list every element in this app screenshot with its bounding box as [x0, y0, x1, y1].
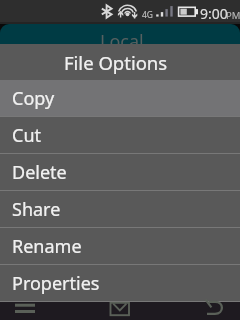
staticText: Properties: [12, 271, 100, 296]
staticText: PM: [226, 9, 240, 22]
staticText: 9:00: [200, 4, 228, 23]
button[interactable]: Share: [0, 191, 240, 227]
staticText: Rename: [12, 234, 82, 259]
button[interactable]: Back: [160, 302, 240, 320]
staticText: Delete: [12, 160, 67, 185]
button[interactable]: Properties: [0, 265, 240, 301]
button[interactable]: Delete: [0, 154, 240, 190]
staticText: Copy: [12, 86, 55, 111]
staticText: Local: [100, 29, 144, 44]
button[interactable]: Cut: [0, 117, 240, 153]
button[interactable]: Menu: [0, 302, 80, 320]
button[interactable]: Rename: [0, 228, 240, 264]
staticText: Cut: [12, 123, 41, 148]
staticText: Share: [12, 197, 61, 222]
button[interactable]: Home: [80, 302, 160, 320]
staticText: 4G: [142, 9, 154, 21]
staticText: File Options: [64, 50, 168, 75]
button[interactable]: Copy: [0, 80, 240, 116]
